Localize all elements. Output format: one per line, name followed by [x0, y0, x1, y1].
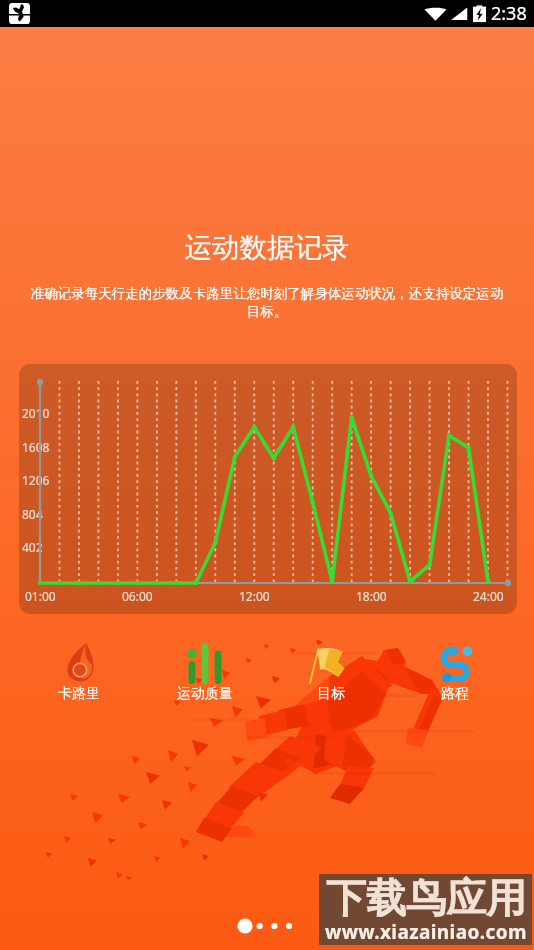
staticText: 06:00 — [122, 588, 153, 604]
button[interactable]: 路程 — [421, 636, 489, 704]
button[interactable]: 目标 — [297, 636, 365, 704]
staticText: 2:38 — [491, 1, 527, 26]
staticText: 目标 — [317, 685, 345, 703]
staticText: 18:00 — [356, 588, 387, 604]
staticText: 卡路里 — [58, 685, 100, 703]
staticText: 1608 — [22, 439, 50, 455]
staticText: 804 — [22, 506, 43, 522]
staticText: 402 — [22, 539, 43, 555]
staticText: 12:00 — [239, 588, 270, 604]
staticText: 下载鸟应用 — [326, 873, 526, 923]
staticText: 1206 — [22, 472, 50, 488]
staticText: 2010 — [22, 405, 50, 421]
staticText: 运动数据记录 — [0, 231, 534, 266]
button[interactable]: 运动质量 — [171, 636, 239, 704]
staticText: 路程 — [441, 685, 469, 703]
staticText: 24:00 — [473, 588, 504, 604]
button[interactable]: 卡路里 — [45, 636, 113, 704]
staticText: www.xiazainiao.com — [325, 919, 527, 945]
staticText: 运动质量 — [177, 685, 233, 703]
staticText: 01:00 — [25, 588, 56, 604]
staticText: 准确记录每天行走的步数及卡路里让您时刻了解身体运动状况，还支持设定运动目标。 — [29, 285, 505, 320]
